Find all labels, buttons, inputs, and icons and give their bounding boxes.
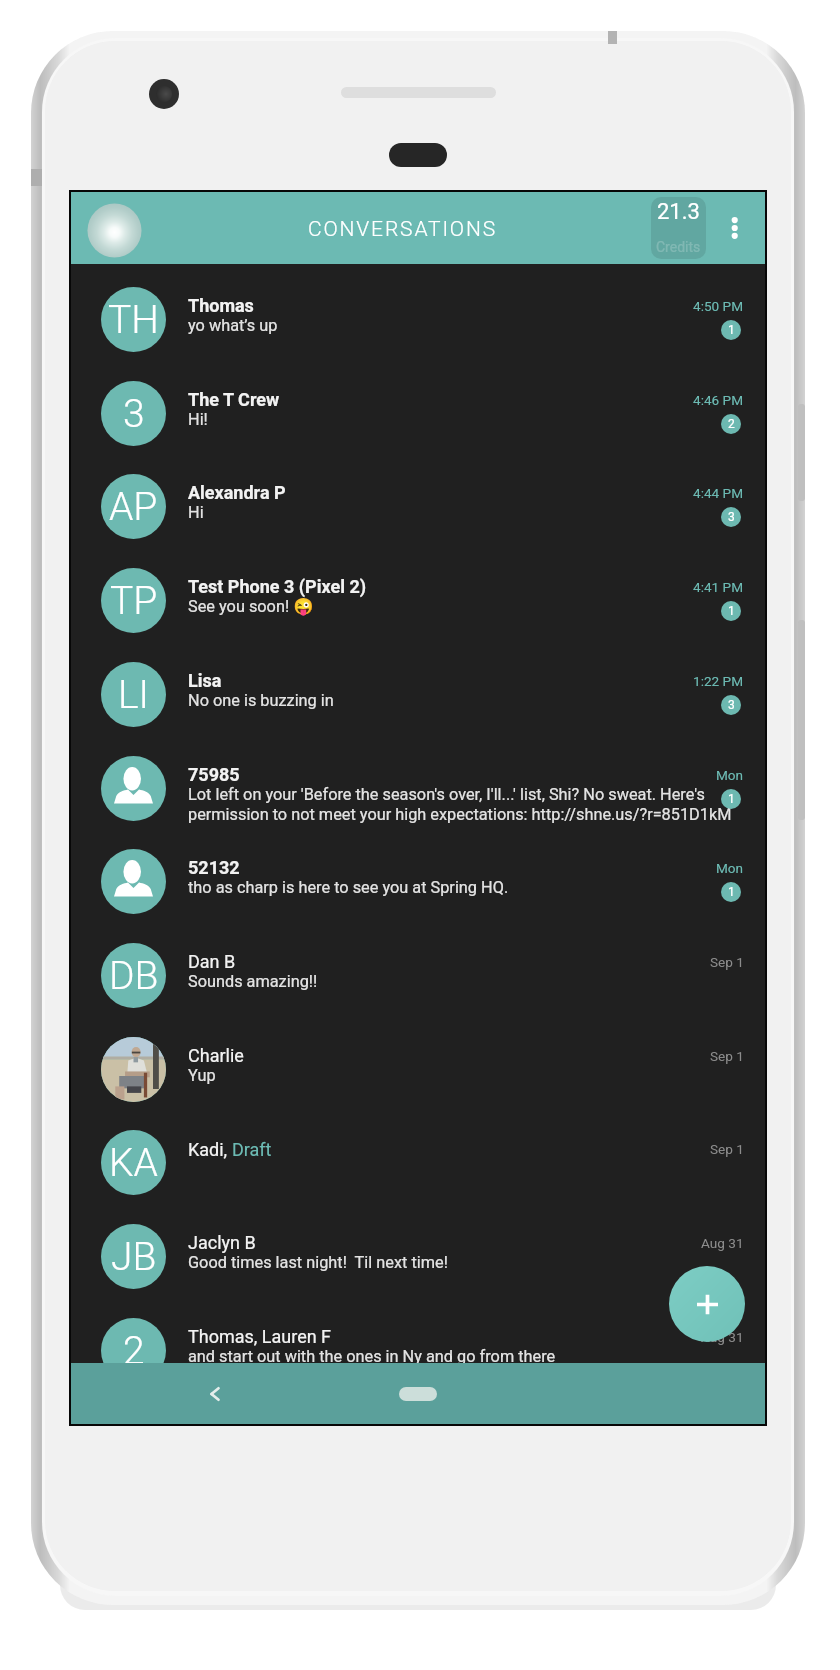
- button[interactable]: LI: [71, 639, 765, 733]
- staticText: 4:46 PM: [693, 392, 744, 408]
- staticText: 4:50 PM: [693, 298, 744, 314]
- staticText: Sep 1: [710, 1048, 744, 1064]
- staticText: 1: [728, 792, 735, 806]
- button[interactable]: TH: [71, 264, 765, 358]
- staticText: 3: [123, 391, 145, 437]
- staticText: 1: [728, 885, 735, 899]
- staticText: JB: [111, 1234, 157, 1280]
- staticText: Draft: [232, 1139, 272, 1160]
- staticText: 1:22 PM: [693, 673, 744, 689]
- staticText: Thomas, Lauren F: [188, 1326, 750, 1347]
- staticText: 1: [728, 323, 735, 337]
- staticText: Mon: [716, 860, 744, 876]
- button[interactable]: 52132: [71, 826, 765, 920]
- staticText: tho as charp is here to see you at Sprin…: [188, 878, 788, 897]
- staticText: Lot left on your 'Before the season's ov…: [188, 785, 788, 824]
- staticText: 2: [728, 417, 735, 431]
- staticText: TH: [108, 297, 159, 343]
- button[interactable]: Back: [193, 1372, 237, 1416]
- staticText: Sep 1: [710, 1141, 744, 1157]
- staticText: CONVERSATIONS: [308, 217, 497, 242]
- staticText: Sep 1: [710, 954, 744, 970]
- staticText: Hi!: [188, 410, 788, 429]
- staticText: 75985: [188, 764, 750, 785]
- staticText: Test Phone 3 (Pixel 2): [188, 576, 750, 597]
- staticText: 52132: [188, 857, 750, 878]
- staticText: Aug 31: [701, 1235, 744, 1251]
- staticText: yo what’s up: [188, 316, 788, 335]
- staticText: AP: [109, 484, 158, 530]
- staticText: 4:44 PM: [693, 485, 744, 501]
- button[interactable]: 2: [71, 1295, 765, 1389]
- staticText: Dan B: [188, 951, 750, 972]
- staticText: KA: [109, 1140, 158, 1186]
- button[interactable]: KA: [71, 1107, 765, 1201]
- staticText: See you soon! 😜: [188, 597, 788, 616]
- staticText: Good times last night! Til next time!: [188, 1253, 788, 1272]
- button[interactable]: JB: [71, 1201, 765, 1295]
- staticText: 21.3: [657, 199, 700, 225]
- button[interactable]: TP: [71, 545, 765, 639]
- staticText: 1: [728, 604, 735, 618]
- staticText: and start out with the ones in Ny and go…: [188, 1347, 788, 1366]
- button[interactable]: Charlie: [71, 1014, 765, 1108]
- button[interactable]: 3: [71, 358, 765, 452]
- staticText: LI: [118, 672, 149, 718]
- staticText: 3: [728, 510, 735, 524]
- button[interactable]: DB: [71, 920, 765, 1014]
- staticText: Thomas: [188, 295, 750, 316]
- button[interactable]: Home: [399, 1387, 437, 1401]
- button[interactable]: 21.3: [651, 197, 706, 259]
- staticText: 2: [123, 1328, 145, 1374]
- button[interactable]: 75985: [71, 733, 765, 827]
- staticText: Yup: [188, 1066, 788, 1085]
- staticText: 3: [728, 698, 735, 712]
- staticText: Kadi,: [188, 1139, 232, 1160]
- staticText: Aug 31: [701, 1329, 744, 1345]
- button[interactable]: AP: [71, 451, 765, 545]
- button[interactable]: More options: [712, 206, 756, 250]
- button[interactable]: New conversation: [669, 1266, 745, 1342]
- staticText: Mon: [716, 767, 744, 783]
- staticText: 4:41 PM: [693, 579, 744, 595]
- staticText: No one is buzzing in: [188, 691, 788, 710]
- staticText: Sounds amazing!!: [188, 972, 788, 991]
- staticText: DB: [109, 953, 159, 999]
- staticText: Hi: [188, 503, 788, 522]
- staticText: Credits: [656, 239, 701, 255]
- staticText: TP: [110, 578, 158, 624]
- staticText: The T Crew: [188, 389, 750, 410]
- staticText: Alexandra P: [188, 482, 750, 503]
- staticText: Jaclyn B: [188, 1232, 750, 1253]
- staticText: Lisa: [188, 670, 750, 691]
- staticText: Charlie: [188, 1045, 750, 1066]
